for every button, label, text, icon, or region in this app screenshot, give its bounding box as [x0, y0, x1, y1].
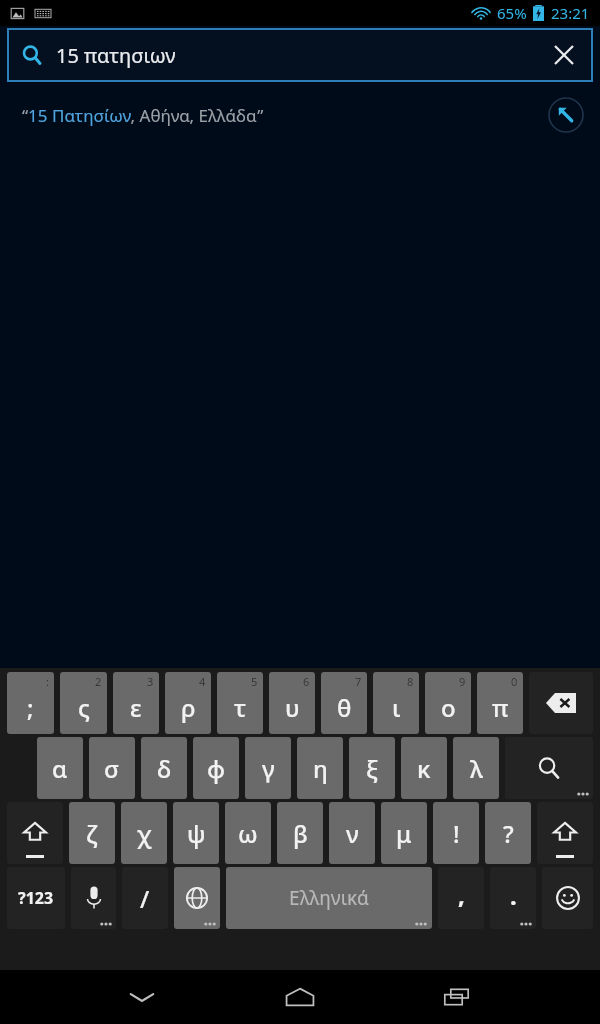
button[interactable]: ,: [438, 867, 484, 929]
button[interactable]: ξ: [349, 737, 395, 799]
button[interactable]: Clear: [540, 31, 588, 79]
staticText: 23:21: [551, 3, 590, 23]
staticText: 0: [511, 674, 518, 689]
staticText: 6: [303, 674, 310, 689]
staticText: ρ: [181, 691, 196, 724]
staticText: ;: [27, 691, 34, 724]
button[interactable]: 5: [217, 672, 263, 734]
button[interactable]: φ: [193, 737, 239, 799]
staticText: 3: [147, 674, 154, 689]
button[interactable]: Voice input: [71, 867, 116, 929]
staticText: χ: [137, 817, 152, 850]
staticText: ε: [130, 691, 142, 724]
button[interactable]: 9: [425, 672, 471, 734]
button[interactable]: Emoji: [542, 867, 593, 929]
button[interactable]: Search: [505, 737, 593, 799]
button[interactable]: β: [277, 802, 323, 864]
staticText: ?: [503, 817, 514, 850]
button[interactable]: α: [37, 737, 83, 799]
staticText: η: [313, 752, 328, 785]
button[interactable]: Backspace: [529, 672, 593, 734]
button[interactable]: !: [433, 802, 479, 864]
staticText: .: [510, 879, 517, 912]
staticText: π: [492, 691, 509, 724]
staticText: α: [52, 752, 68, 785]
button[interactable]: Change language: [174, 867, 220, 929]
button[interactable]: ψ: [173, 802, 219, 864]
staticText: δ: [157, 752, 172, 785]
staticText: γ: [262, 752, 275, 785]
staticText: φ: [207, 752, 226, 785]
button[interactable]: μ: [381, 802, 427, 864]
staticText: “15 Πατησίων, Αθήνα, Ελλάδα”: [22, 104, 264, 127]
staticText: 8: [407, 674, 414, 689]
button[interactable]: ?: [485, 802, 531, 864]
staticText: :: [46, 674, 49, 689]
staticText: ξ: [366, 752, 378, 785]
button[interactable]: λ: [453, 737, 499, 799]
button[interactable]: γ: [245, 737, 291, 799]
other: Search: [22, 45, 42, 65]
staticText: ?123: [18, 887, 54, 909]
staticText: 7: [355, 674, 362, 689]
button[interactable]: Shift: [7, 802, 63, 864]
button[interactable]: Shift: [537, 802, 593, 864]
staticText: Ελληνικά: [289, 885, 369, 911]
staticText: 2: [95, 674, 102, 689]
button[interactable]: Hide keyboard: [112, 970, 172, 1024]
staticText: β: [293, 817, 308, 850]
button[interactable]: “15 Πατησίων, Αθήνα, Ελλάδα”: [0, 84, 600, 146]
staticText: ν: [346, 817, 359, 850]
button[interactable]: 0: [477, 672, 523, 734]
button[interactable]: 2: [60, 672, 107, 734]
button[interactable]: ω: [225, 802, 271, 864]
button[interactable]: η: [297, 737, 343, 799]
staticText: ζ: [86, 817, 98, 850]
button[interactable]: σ: [89, 737, 135, 799]
staticText: θ: [337, 691, 352, 724]
staticText: ι: [392, 691, 401, 724]
button[interactable]: 7: [321, 672, 367, 734]
button[interactable]: χ: [121, 802, 167, 864]
button[interactable]: Use suggestion: [540, 89, 592, 141]
staticText: 5: [251, 674, 258, 689]
button[interactable]: Recent apps: [428, 970, 488, 1024]
button[interactable]: ν: [329, 802, 375, 864]
staticText: ψ: [187, 817, 206, 850]
staticText: ,: [458, 878, 465, 911]
button[interactable]: Ελληνικά: [226, 867, 432, 929]
button[interactable]: ζ: [69, 802, 115, 864]
button[interactable]: δ: [141, 737, 187, 799]
button[interactable]: :: [7, 672, 54, 734]
button[interactable]: 4: [165, 672, 211, 734]
staticText: /: [140, 882, 150, 915]
staticText: 15 πατησιων: [56, 42, 176, 69]
staticText: ς: [78, 691, 90, 724]
button[interactable]: ?123: [7, 867, 65, 929]
staticText: τ: [234, 691, 247, 724]
button[interactable]: 6: [269, 672, 315, 734]
staticText: 4: [199, 674, 206, 689]
staticText: ο: [441, 691, 456, 724]
staticText: λ: [470, 752, 483, 785]
button[interactable]: 3: [113, 672, 159, 734]
button[interactable]: Search: [8, 29, 592, 81]
staticText: μ: [396, 817, 412, 850]
staticText: ω: [238, 817, 258, 850]
staticText: !: [453, 817, 460, 850]
button[interactable]: .: [490, 867, 536, 929]
button[interactable]: Home: [270, 970, 330, 1024]
button[interactable]: 8: [373, 672, 419, 734]
staticText: υ: [285, 691, 300, 724]
button[interactable]: /: [122, 867, 168, 929]
button[interactable]: κ: [401, 737, 447, 799]
staticText: κ: [417, 752, 431, 785]
staticText: 65%: [497, 3, 527, 23]
staticText: 9: [459, 674, 466, 689]
staticText: σ: [104, 752, 120, 785]
